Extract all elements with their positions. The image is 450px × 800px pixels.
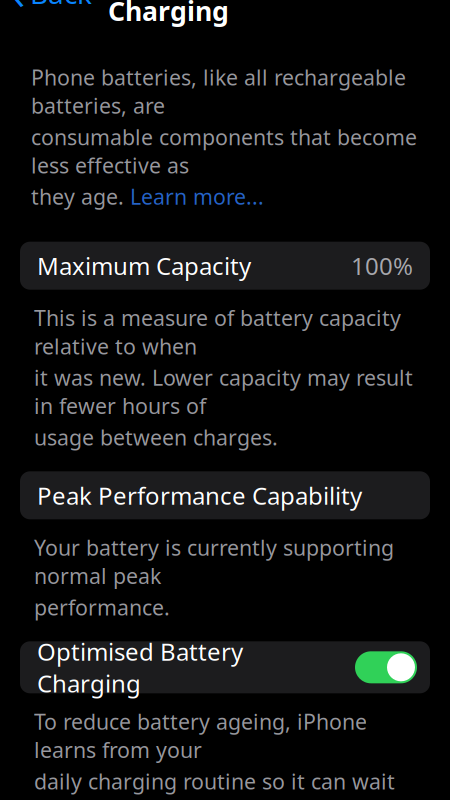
staticText: daily charging routine so it can wait to…: [34, 767, 395, 800]
staticText: it was new. Lower capacity may result in…: [34, 363, 413, 420]
staticText: Maximum Capacity: [37, 250, 251, 282]
button[interactable]: ‹: [0, 0, 98, 13]
staticText: Your battery is currently supporting nor…: [34, 533, 394, 590]
staticText: Peak Performance Capability: [37, 479, 362, 511]
staticText: Back: [30, 0, 92, 12]
staticText: usage between charges.: [34, 423, 278, 451]
staticText: To reduce battery ageing, iPhone learns …: [34, 707, 367, 764]
staticText: This is a measure of battery capacity re…: [34, 304, 401, 360]
staticText: consumable components that become less e…: [31, 123, 417, 179]
staticText: they age.: [31, 182, 130, 211]
button[interactable]: Peak Performance Capability: [20, 471, 430, 519]
button[interactable]: Optimised Battery Charging: [20, 641, 430, 693]
staticText: performance.: [34, 593, 170, 621]
button[interactable]: Maximum Capacity: [20, 242, 430, 290]
staticText: Battery Health & Charging: [108, 0, 332, 28]
staticText: Phone batteries, like all rechargeable b…: [31, 63, 406, 120]
button[interactable]: Learn more...: [130, 182, 264, 211]
staticText: Learn more...: [130, 182, 264, 211]
staticText: 100%: [351, 250, 413, 282]
staticText: Optimised Battery Charging: [37, 635, 243, 699]
staticText: ‹: [12, 0, 25, 21]
